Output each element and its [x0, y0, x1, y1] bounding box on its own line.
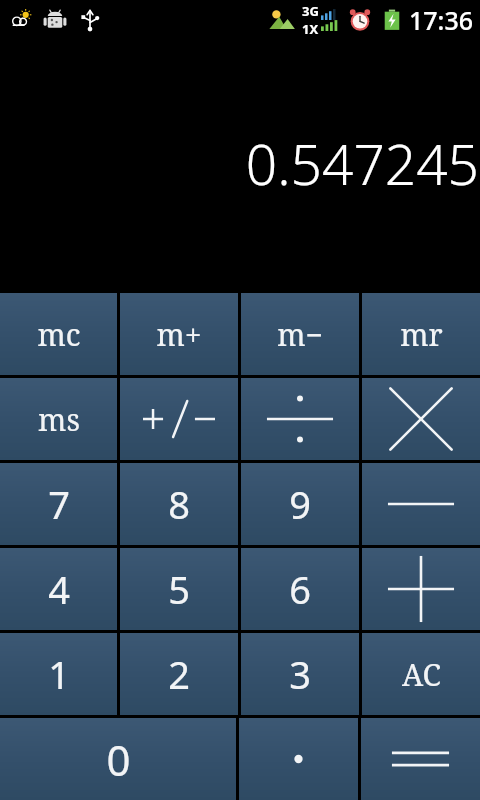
- button[interactable]: 7: [0, 463, 117, 545]
- staticText: 0: [106, 731, 131, 788]
- staticText: ms: [38, 399, 80, 440]
- staticText: m−: [277, 314, 323, 355]
- button[interactable]: Decimal point: [239, 718, 358, 800]
- staticText: 4: [48, 563, 70, 615]
- button[interactable]: mc: [0, 293, 117, 375]
- staticText: 2: [168, 648, 190, 700]
- staticText: 1X: [302, 20, 319, 38]
- button[interactable]: ms: [0, 378, 117, 460]
- staticText: 6: [289, 563, 311, 615]
- button[interactable]: Equals: [361, 718, 480, 800]
- button[interactable]: 5: [120, 548, 238, 630]
- button[interactable]: 1: [0, 633, 117, 715]
- button[interactable]: Divide: [241, 378, 359, 460]
- button[interactable]: m−: [241, 293, 359, 375]
- staticText: 7: [48, 478, 70, 530]
- button[interactable]: Plus: [362, 548, 480, 630]
- staticText: mc: [37, 314, 81, 355]
- button[interactable]: AC: [362, 633, 480, 715]
- staticText: 5: [168, 563, 190, 615]
- staticText: AC: [402, 654, 441, 695]
- staticText: 17:36: [409, 3, 474, 37]
- staticText: 0.547245: [245, 126, 479, 201]
- staticText: 8: [168, 478, 190, 530]
- button[interactable]: m+: [120, 293, 238, 375]
- button[interactable]: Minus: [362, 463, 480, 545]
- button[interactable]: 3: [241, 633, 359, 715]
- button[interactable]: 2: [120, 633, 238, 715]
- button[interactable]: 8: [120, 463, 238, 545]
- button[interactable]: mr: [362, 293, 480, 375]
- button[interactable]: 0: [0, 718, 236, 800]
- button[interactable]: 4: [0, 548, 117, 630]
- button[interactable]: 6: [241, 548, 359, 630]
- button[interactable]: 9: [241, 463, 359, 545]
- button[interactable]: Multiply: [362, 378, 480, 460]
- staticText: 9: [289, 478, 311, 530]
- staticText: m+: [156, 314, 202, 355]
- staticText: 3G: [302, 2, 319, 20]
- staticText: 3: [289, 648, 311, 700]
- staticText: mr: [400, 314, 443, 355]
- staticText: 1: [48, 648, 70, 700]
- button[interactable]: Plus minus: [120, 378, 238, 460]
